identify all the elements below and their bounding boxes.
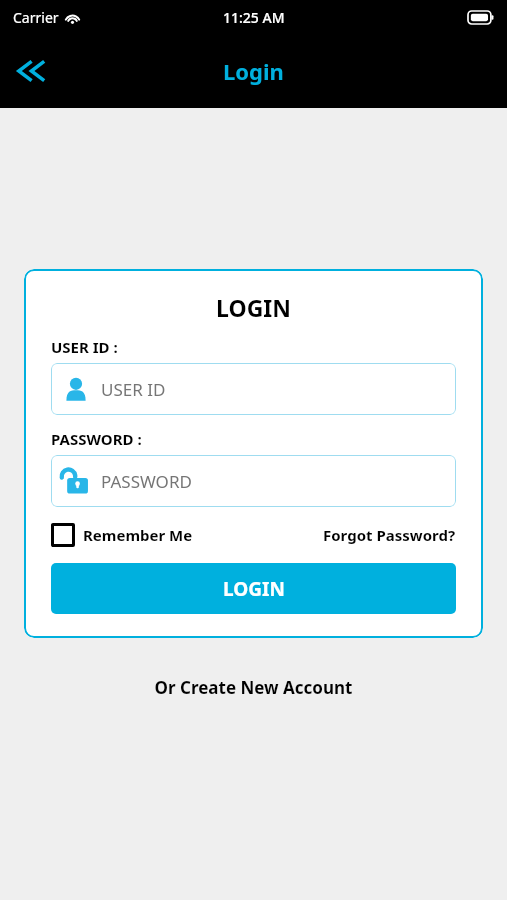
staticText: LOGIN: [223, 576, 285, 602]
staticText: USER ID :: [51, 337, 118, 357]
button[interactable]: Or Create New Account: [0, 676, 507, 699]
staticText: Login: [223, 56, 284, 86]
button[interactable]: PASSWORD: [51, 455, 456, 507]
staticText: 11:25 AM: [223, 8, 285, 27]
button[interactable]: Remember Me: [51, 523, 193, 547]
staticText: LOGIN: [51, 292, 456, 323]
staticText: Remember Me: [83, 525, 193, 545]
staticText: PASSWORD :: [51, 429, 142, 449]
button[interactable]: LOGIN: [51, 563, 456, 614]
staticText: PASSWORD: [101, 470, 192, 493]
button[interactable]: Back: [8, 47, 56, 95]
button[interactable]: Forgot Password?: [323, 525, 456, 545]
staticText: Carrier: [13, 8, 59, 27]
button[interactable]: USER ID: [51, 363, 456, 415]
staticText: USER ID: [101, 378, 166, 401]
